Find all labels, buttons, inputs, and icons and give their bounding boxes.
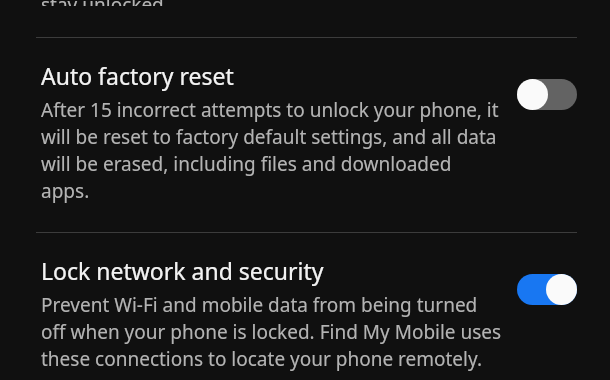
button[interactable]: Lock network and security xyxy=(0,233,610,372)
staticText: stay unlocked. xyxy=(41,0,169,6)
button[interactable]: Auto factory reset toggle, off xyxy=(517,79,577,110)
staticText: Prevent Wi-Fi and mobile data from being… xyxy=(41,292,503,372)
staticText: After 15 incorrect attempts to unlock yo… xyxy=(41,97,503,204)
button[interactable]: stay unlocked. xyxy=(0,0,610,14)
button[interactable]: Lock network and security toggle, on xyxy=(517,274,577,305)
staticText: Lock network and security xyxy=(41,255,324,286)
button[interactable]: Auto factory reset xyxy=(0,38,610,212)
staticText: Auto factory reset xyxy=(41,60,234,91)
